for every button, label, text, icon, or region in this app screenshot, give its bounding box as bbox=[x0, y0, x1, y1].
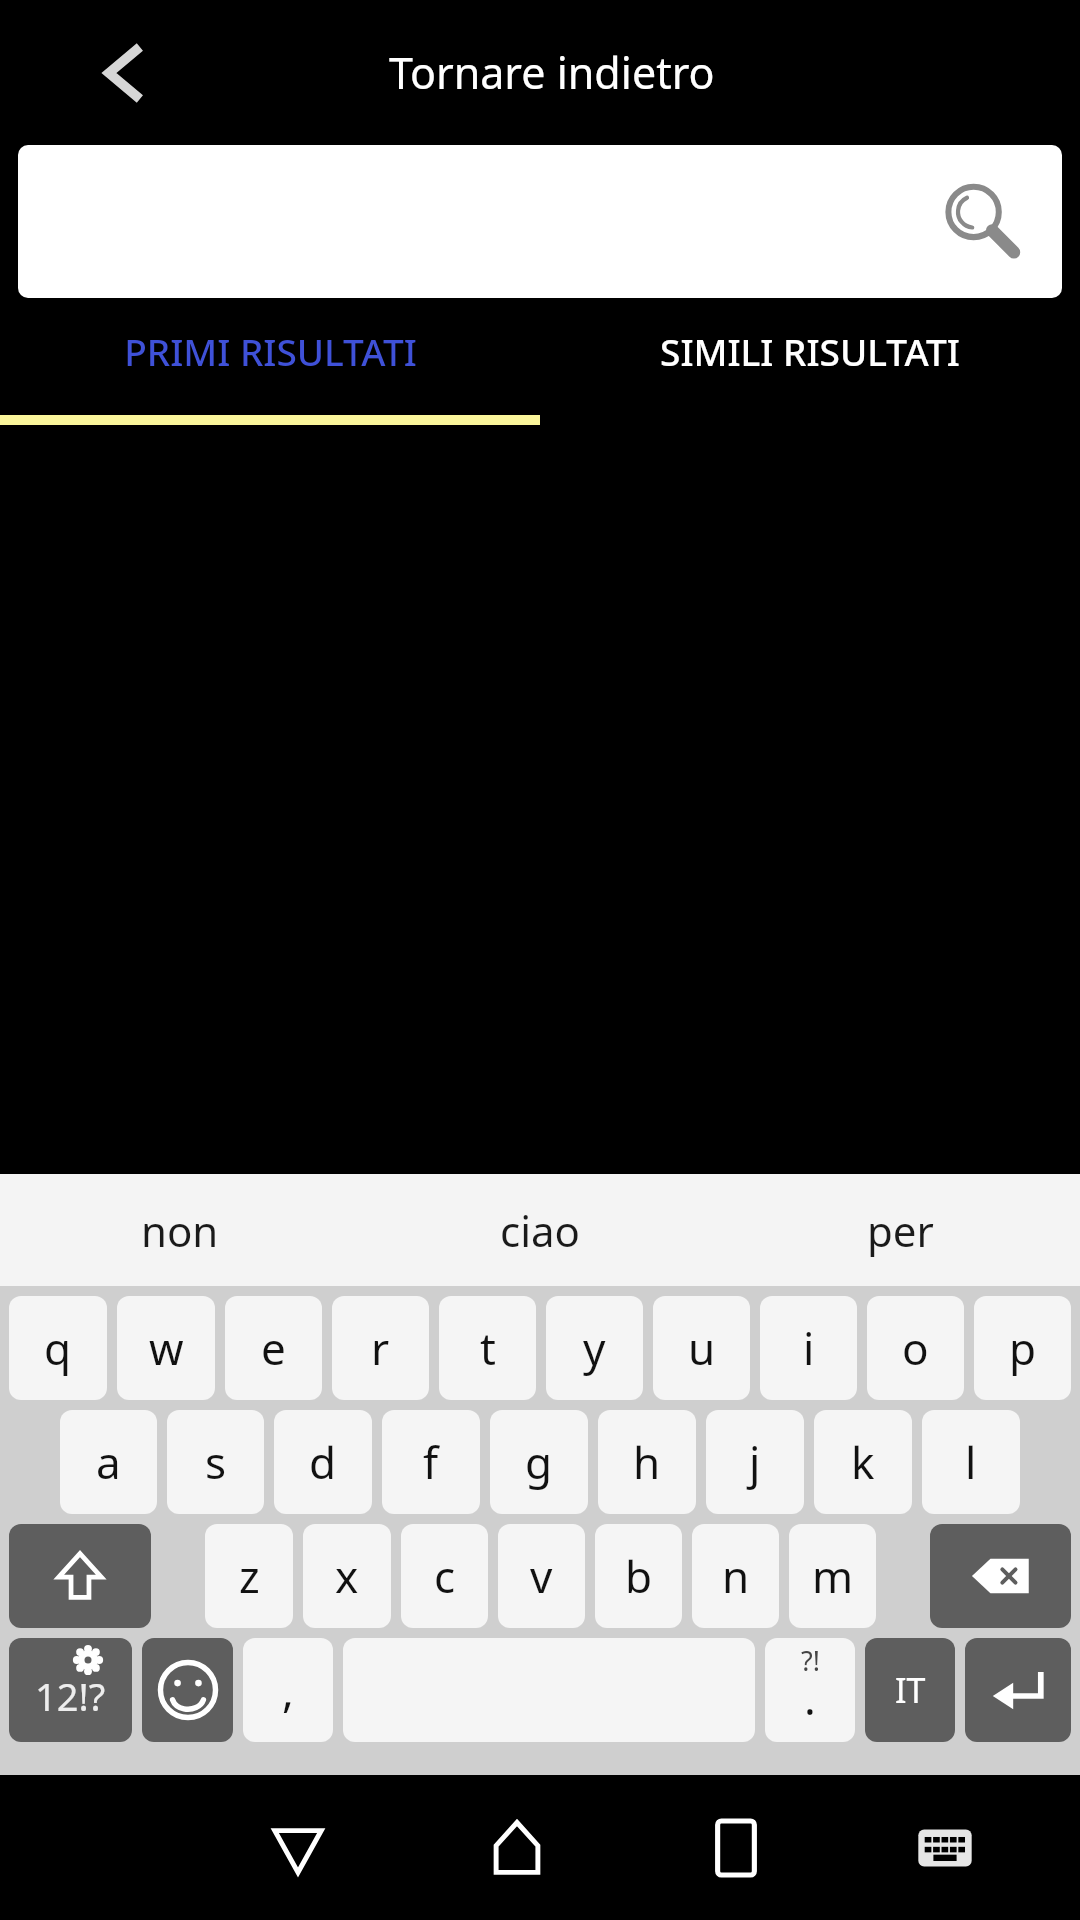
button[interactable]: Search bbox=[18, 145, 1062, 298]
button[interactable]: t bbox=[439, 1296, 536, 1400]
button[interactable]: p bbox=[974, 1296, 1071, 1400]
staticText: q bbox=[44, 1318, 72, 1378]
staticText: PRIMI RISULTATI bbox=[124, 326, 417, 376]
staticText: h bbox=[633, 1432, 661, 1492]
button[interactable]: per bbox=[720, 1174, 1080, 1286]
staticText: r bbox=[371, 1318, 390, 1378]
button[interactable]: Emoji bbox=[142, 1638, 233, 1742]
button[interactable]: f bbox=[382, 1410, 480, 1514]
staticText: y bbox=[583, 1318, 606, 1378]
button[interactable]: ciao bbox=[360, 1174, 720, 1286]
staticText: ciao bbox=[500, 1202, 580, 1259]
button[interactable]: e bbox=[225, 1296, 322, 1400]
button[interactable]: z bbox=[205, 1524, 293, 1628]
staticText: k bbox=[851, 1432, 875, 1492]
button[interactable]: a bbox=[60, 1410, 157, 1514]
staticText: n bbox=[722, 1546, 750, 1606]
button[interactable]: v bbox=[498, 1524, 585, 1628]
button[interactable]: m bbox=[789, 1524, 876, 1628]
staticText: m bbox=[812, 1546, 854, 1606]
button[interactable]: IT bbox=[865, 1638, 955, 1742]
staticText: s bbox=[205, 1432, 227, 1492]
staticText: w bbox=[149, 1318, 184, 1378]
button[interactable]: SIMILI RISULTATI bbox=[540, 298, 1080, 425]
button[interactable]: non bbox=[0, 1174, 360, 1286]
staticText: , bbox=[282, 1660, 294, 1720]
button[interactable]: ?! bbox=[765, 1638, 855, 1742]
staticText: u bbox=[688, 1318, 716, 1378]
staticText: IT bbox=[895, 1667, 926, 1713]
staticText: v bbox=[530, 1546, 553, 1606]
button[interactable]: y bbox=[546, 1296, 643, 1400]
button[interactable]: PRIMI RISULTATI bbox=[0, 298, 540, 425]
button[interactable]: k bbox=[814, 1410, 912, 1514]
button[interactable]: j bbox=[706, 1410, 804, 1514]
button[interactable]: q bbox=[9, 1296, 107, 1400]
staticText: non bbox=[141, 1202, 219, 1259]
button[interactable]: Enter bbox=[965, 1638, 1071, 1742]
button[interactable]: Back bbox=[70, 18, 180, 128]
button[interactable]: Home bbox=[407, 1775, 626, 1920]
button[interactable]: Switch keyboard bbox=[845, 1775, 1044, 1920]
staticText: . bbox=[804, 1668, 816, 1728]
staticText: g bbox=[525, 1432, 553, 1492]
button[interactable]: r bbox=[332, 1296, 429, 1400]
staticText: c bbox=[434, 1546, 456, 1606]
button[interactable]: l bbox=[922, 1410, 1020, 1514]
button[interactable]: h bbox=[598, 1410, 696, 1514]
staticText: t bbox=[480, 1318, 496, 1378]
staticText: a bbox=[96, 1432, 121, 1492]
button[interactable]: w bbox=[117, 1296, 215, 1400]
staticText: b bbox=[625, 1546, 653, 1606]
button[interactable]: Backspace bbox=[930, 1524, 1071, 1628]
staticText: x bbox=[335, 1546, 359, 1606]
button[interactable]: u bbox=[653, 1296, 750, 1400]
staticText: e bbox=[261, 1318, 286, 1378]
button[interactable]: s bbox=[167, 1410, 264, 1514]
staticText: 12!? bbox=[35, 1670, 106, 1722]
button[interactable]: b bbox=[595, 1524, 682, 1628]
staticText: j bbox=[749, 1432, 761, 1492]
button[interactable]: x bbox=[303, 1524, 391, 1628]
staticText: ?! bbox=[801, 1642, 820, 1679]
staticText: SIMILI RISULTATI bbox=[660, 326, 960, 376]
button[interactable]: Shift bbox=[9, 1524, 151, 1628]
staticText: l bbox=[965, 1432, 977, 1492]
other: Search bbox=[940, 180, 1024, 264]
button[interactable]: c bbox=[401, 1524, 488, 1628]
button[interactable]: i bbox=[760, 1296, 857, 1400]
button[interactable]: o bbox=[867, 1296, 964, 1400]
staticText: d bbox=[309, 1432, 337, 1492]
staticText: o bbox=[902, 1318, 929, 1378]
staticText: f bbox=[423, 1432, 439, 1492]
staticText: Tornare indietro bbox=[389, 43, 715, 102]
button[interactable]: Recents bbox=[626, 1775, 845, 1920]
button[interactable]: n bbox=[692, 1524, 779, 1628]
button[interactable]: d bbox=[274, 1410, 372, 1514]
staticText: z bbox=[239, 1546, 260, 1606]
button[interactable]: Hide keyboard bbox=[188, 1775, 407, 1920]
button[interactable]: g bbox=[490, 1410, 588, 1514]
button[interactable]: Symbols and settings bbox=[9, 1638, 132, 1742]
button[interactable]: , bbox=[243, 1638, 333, 1742]
staticText: p bbox=[1009, 1318, 1037, 1378]
staticText: per bbox=[867, 1202, 934, 1259]
staticText: i bbox=[803, 1318, 815, 1378]
